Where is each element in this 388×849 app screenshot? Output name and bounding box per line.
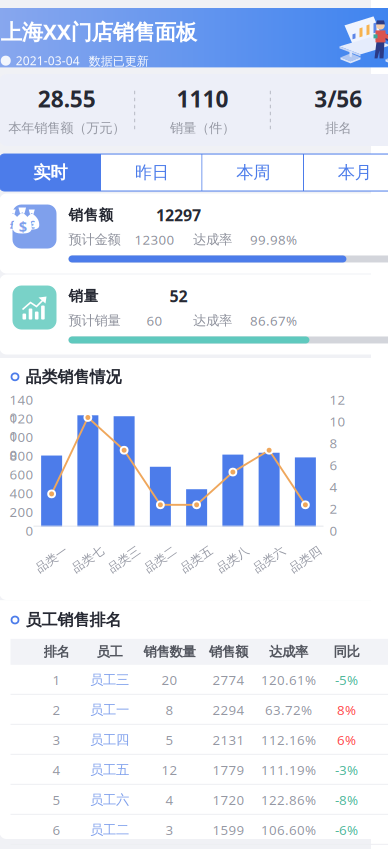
- staticText: 8: [165, 701, 173, 719]
- staticText: 品类一: [34, 552, 70, 567]
- button[interactable]: 2: [10, 695, 388, 725]
- staticText: 4: [165, 791, 173, 809]
- staticText: 品类八: [215, 552, 251, 567]
- button[interactable]: 6: [10, 815, 388, 845]
- button[interactable]: 1: [10, 665, 388, 695]
- staticText: $: [19, 216, 27, 236]
- staticText: £: [10, 217, 16, 232]
- staticText: 600: [9, 465, 33, 483]
- staticText: 200: [9, 503, 33, 521]
- staticText: 2294: [212, 701, 244, 719]
- staticText: 4: [52, 761, 60, 779]
- staticText: 5: [165, 731, 173, 749]
- staticText: €: [29, 217, 35, 232]
- staticText: 预计金额: [68, 231, 120, 248]
- staticText: 员工一: [90, 702, 129, 718]
- staticText: 达成率: [193, 312, 232, 329]
- staticText: 达成率: [193, 231, 232, 248]
- staticText: 0: [25, 522, 33, 539]
- button[interactable]: 实时: [0, 154, 101, 191]
- staticText: 销售额: [68, 206, 113, 224]
- staticText: 1: [52, 671, 60, 689]
- staticText: 品类三: [106, 552, 142, 567]
- staticText: 86.67%: [250, 312, 297, 329]
- staticText: 3/56: [314, 84, 362, 114]
- staticText: 400: [9, 484, 33, 502]
- staticText: 预计销量: [68, 312, 120, 329]
- staticText: 同比: [333, 644, 359, 660]
- staticText: 销售数量: [143, 644, 195, 660]
- staticText: 1000: [9, 428, 33, 463]
- button[interactable]: 5: [10, 785, 388, 815]
- staticText: 6: [52, 821, 60, 839]
- staticText: -5%: [335, 671, 358, 689]
- staticText: 实时: [33, 162, 67, 183]
- staticText: 员工二: [90, 822, 129, 838]
- staticText: 1110: [176, 84, 228, 114]
- button[interactable]: £: [0, 193, 388, 273]
- staticText: -6%: [335, 821, 358, 839]
- staticText: 1779: [212, 761, 244, 779]
- staticText: 112.16%: [261, 731, 316, 749]
- staticText: 106.60%: [261, 821, 316, 839]
- staticText: 2: [329, 500, 337, 517]
- staticText: 60: [146, 312, 162, 329]
- button[interactable]: 3: [10, 725, 388, 755]
- staticText: -8%: [335, 791, 358, 809]
- button[interactable]: 本月: [304, 154, 388, 191]
- staticText: 800: [9, 447, 33, 464]
- staticText: 品类六: [251, 552, 287, 567]
- staticText: 销量（件）: [170, 120, 235, 136]
- staticText: 12: [161, 761, 177, 779]
- staticText: 12300: [134, 231, 174, 248]
- button[interactable]: 4: [10, 755, 388, 785]
- staticText: 员工: [96, 644, 122, 660]
- staticText: 6%: [337, 731, 356, 749]
- staticText: 111.19%: [261, 761, 316, 779]
- staticText: 1400: [9, 391, 33, 426]
- staticText: 1599: [212, 821, 244, 839]
- staticText: 0: [329, 522, 337, 539]
- staticText: 2131: [212, 731, 244, 749]
- staticText: 2774: [212, 671, 244, 689]
- staticText: 上海XX门店销售面板: [1, 17, 197, 46]
- staticText: 1200: [9, 409, 33, 445]
- staticText: 8%: [337, 701, 356, 719]
- staticText: 本周: [236, 162, 270, 183]
- button[interactable]: 昨日: [101, 154, 202, 191]
- staticText: 本月: [338, 162, 372, 183]
- staticText: 2: [52, 701, 60, 719]
- staticText: 品类销售情况: [25, 367, 121, 387]
- staticText: 8: [329, 434, 337, 452]
- staticText: 12: [329, 391, 345, 408]
- staticText: 12297: [156, 204, 201, 226]
- staticText: 销量: [68, 287, 98, 305]
- staticText: 昨日: [135, 162, 169, 183]
- staticText: 达成率: [269, 644, 308, 660]
- staticText: 28.55: [38, 84, 96, 114]
- staticText: 3: [52, 731, 60, 749]
- staticText: 品类四: [287, 552, 323, 567]
- staticText: 品类七: [70, 552, 106, 567]
- staticText: 120.61%: [261, 671, 316, 689]
- staticText: 6: [329, 456, 337, 474]
- button[interactable]: 销量: [0, 274, 388, 354]
- staticText: 20: [161, 671, 177, 689]
- staticText: 品类二: [142, 552, 178, 567]
- staticText: 2021-03-04 数据已更新: [16, 53, 149, 69]
- staticText: 品类五: [179, 552, 215, 567]
- staticText: 63.72%: [265, 701, 312, 719]
- staticText: 员工销售排名: [25, 610, 121, 630]
- button[interactable]: 本周: [202, 154, 304, 191]
- staticText: 122.86%: [261, 791, 316, 809]
- staticText: 排名: [325, 120, 351, 136]
- staticText: 员工六: [90, 792, 129, 808]
- staticText: 员工五: [90, 762, 129, 778]
- staticText: 4: [329, 478, 337, 496]
- staticText: 销售额: [209, 644, 248, 660]
- staticText: 排名: [43, 644, 69, 660]
- staticText: 99.98%: [250, 231, 297, 248]
- staticText: 10: [329, 412, 345, 430]
- staticText: -3%: [335, 761, 358, 779]
- staticText: 员工三: [90, 672, 129, 688]
